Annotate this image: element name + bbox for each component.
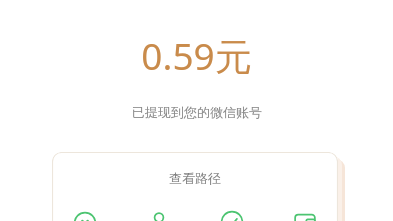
staticText: 已提现到您的微信账号 (132, 104, 262, 120)
staticText: 0.59元 (141, 30, 252, 81)
button[interactable]: 服务 (217, 207, 247, 221)
button[interactable]: 我 (144, 207, 174, 221)
button[interactable]: 微信 (70, 207, 100, 221)
button[interactable]: 钱包 (290, 207, 320, 221)
button[interactable]: 查看路径 (52, 152, 338, 221)
staticText: 查看路径 (169, 170, 221, 186)
